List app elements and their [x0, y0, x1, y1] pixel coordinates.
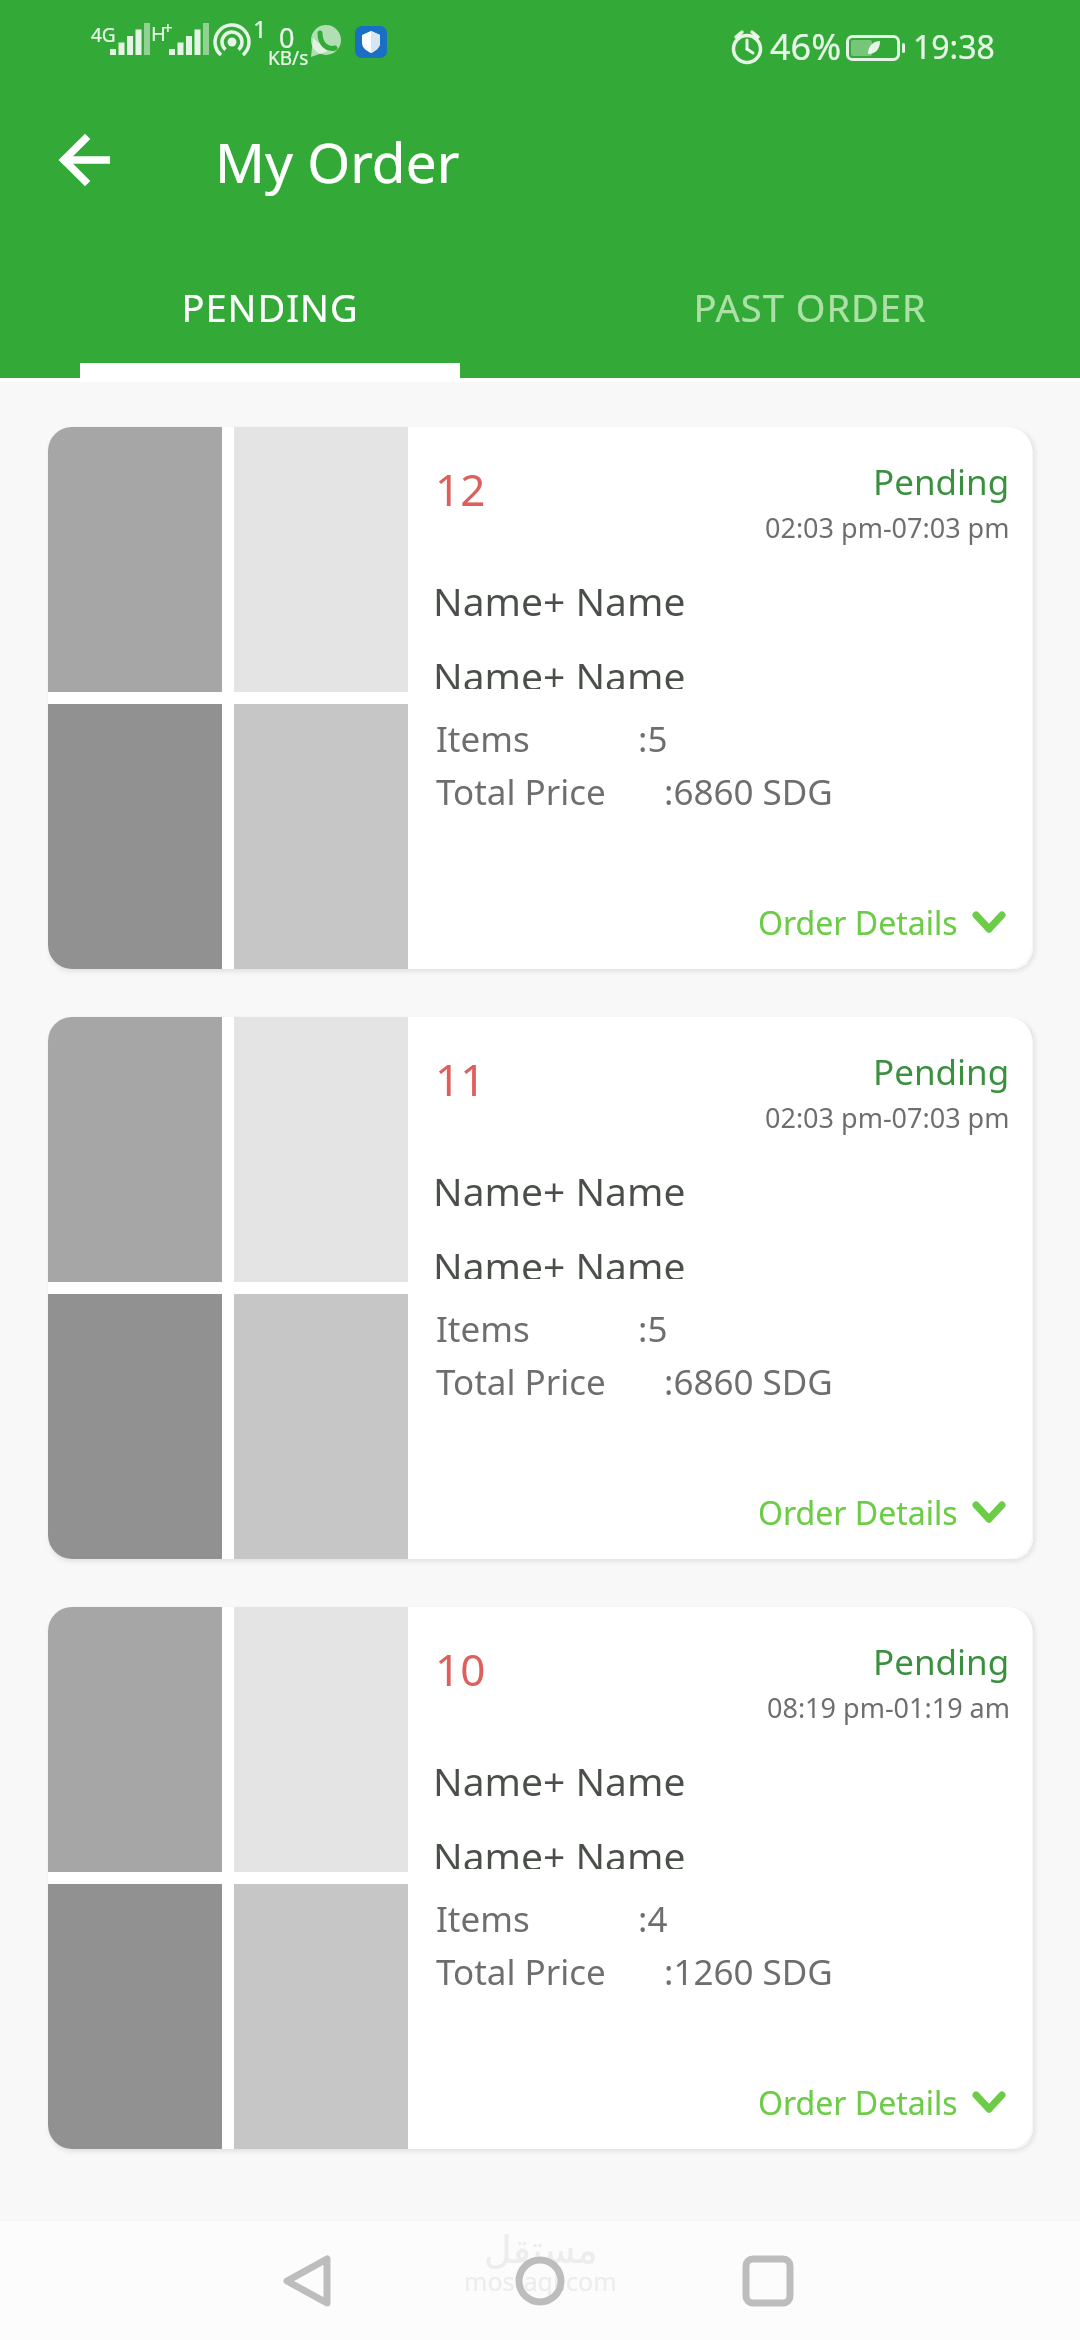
staticText: Items [436, 1305, 638, 1353]
staticText: 0 [279, 19, 295, 56]
staticText: 46% [770, 22, 842, 71]
staticText: Total Price [436, 1358, 664, 1406]
button[interactable]: Back [44, 114, 136, 206]
staticText: :5 [638, 715, 668, 763]
staticText: PENDING [181, 281, 359, 333]
staticText: H [151, 20, 166, 47]
staticText: Items [436, 715, 638, 763]
staticText: Order Details [758, 2081, 958, 2125]
button[interactable]: Order Details [758, 1491, 1004, 1535]
staticText: Name+ Name [433, 1164, 686, 1217]
staticText: mostaql.com [464, 2264, 617, 2298]
staticText: 02:03 pm-07:03 pm [765, 509, 1010, 546]
staticText: :1260 SDG [664, 1948, 833, 1996]
staticText: Pending [873, 1048, 1010, 1096]
staticText: 12 [435, 459, 486, 519]
staticText: :6860 SDG [664, 768, 833, 816]
button[interactable]: Recent apps [720, 2233, 816, 2329]
button[interactable]: 10 [48, 1607, 1032, 2149]
button[interactable]: Home [492, 2233, 588, 2329]
staticText: 08:19 pm-01:19 am [767, 1689, 1010, 1726]
staticText: My Order [215, 124, 460, 199]
staticText: Order Details [758, 901, 958, 945]
staticText: 11 [435, 1049, 486, 1109]
staticText: PAST ORDER [693, 281, 927, 333]
staticText: Name+ Name [433, 1754, 686, 1807]
staticText: KB/s [268, 45, 309, 71]
staticText: :4 [638, 1895, 668, 1943]
button[interactable]: Order Details [758, 901, 1004, 945]
staticText: Items [436, 1895, 638, 1943]
staticText: :5 [638, 1305, 668, 1353]
button[interactable]: Back [260, 2233, 356, 2329]
button[interactable]: PENDING [0, 254, 540, 378]
staticText: Name+ Name [433, 574, 686, 627]
staticText: 10 [435, 1639, 486, 1699]
staticText: Pending [873, 1638, 1010, 1686]
button[interactable]: 12 [48, 427, 1032, 969]
staticText: 02:03 pm-07:03 pm [765, 1099, 1010, 1136]
button[interactable]: PAST ORDER [540, 254, 1080, 378]
staticText: Name+ Name [433, 649, 686, 689]
staticText: Pending [873, 458, 1010, 506]
staticText: Total Price [436, 768, 664, 816]
staticText: Total Price [436, 1948, 664, 1996]
button[interactable]: Order Details [758, 2081, 1004, 2125]
staticText: :6860 SDG [664, 1358, 833, 1406]
button[interactable]: 11 [48, 1017, 1032, 1559]
staticText: Name+ Name [433, 1239, 686, 1279]
staticText: مستقل [484, 2228, 598, 2272]
staticText: 1 [253, 12, 267, 45]
staticText: 19:38 [913, 25, 995, 69]
staticText: 4G [91, 22, 116, 48]
staticText: Name+ Name [433, 1829, 686, 1869]
staticText: Order Details [758, 1491, 958, 1535]
staticText: + [163, 16, 173, 39]
